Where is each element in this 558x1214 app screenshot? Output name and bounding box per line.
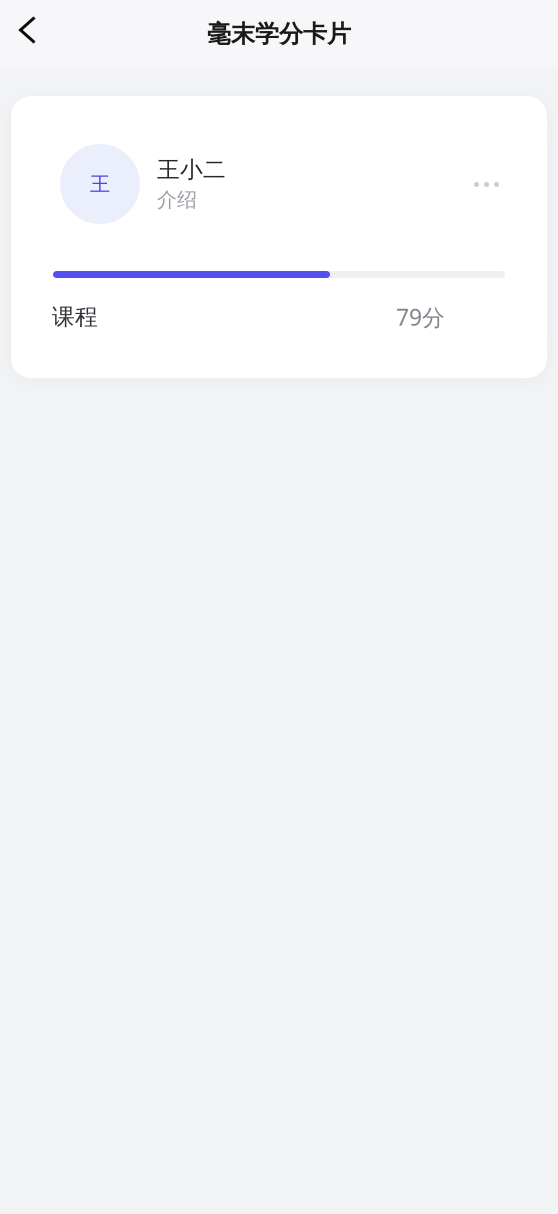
button[interactable]: More options: [460, 166, 513, 203]
staticText: 毫末学分卡片: [207, 19, 351, 49]
staticText: 王: [90, 172, 110, 196]
staticText: 79分: [396, 302, 445, 332]
staticText: 介绍: [157, 188, 197, 212]
staticText: 王小二: [157, 156, 226, 184]
staticText: 课程: [52, 303, 98, 331]
button[interactable]: Back: [0, 10, 48, 58]
button[interactable]: 课程: [11, 278, 547, 350]
